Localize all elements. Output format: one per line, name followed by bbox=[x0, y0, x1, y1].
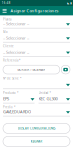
button[interactable]: Predio * bbox=[3, 103, 70, 116]
staticText: ASIGNAR bbox=[30, 140, 42, 143]
staticText: 16:48 bbox=[2, 1, 11, 5]
button[interactable]: Cliente bbox=[3, 42, 70, 57]
staticText: -- Seleccionar -- bbox=[3, 35, 29, 40]
button[interactable]: Silo bbox=[3, 28, 70, 42]
staticText: BUSCAR CONFIGURACIONES bbox=[18, 127, 55, 130]
staticText: Predio * bbox=[3, 105, 15, 109]
staticText: EPS bbox=[3, 96, 9, 101]
staticText: -- Seleccionar -- bbox=[3, 21, 29, 26]
button[interactable]: Menu bbox=[1, 6, 8, 16]
button[interactable]: ESCRIBIR / ESCANEAR bbox=[3, 65, 60, 74]
staticText: Unidad * bbox=[38, 91, 50, 95]
staticText: Cliente bbox=[3, 44, 14, 48]
staticText: N° de Serie * bbox=[3, 77, 21, 80]
staticText: ESCRIBIR / ESCANEAR bbox=[17, 68, 45, 71]
staticText: Producto * bbox=[3, 91, 18, 95]
button[interactable]: N° de Serie * bbox=[3, 75, 70, 89]
staticText: GAVI,EDUARDO bbox=[3, 109, 31, 114]
button[interactable]: Producto * bbox=[3, 89, 34, 103]
button[interactable]: Escanear código bbox=[61, 65, 70, 74]
button[interactable]: Unidad * bbox=[38, 89, 70, 103]
staticText: KEC GL300 bbox=[38, 96, 57, 101]
staticText: Referencia * bbox=[3, 59, 20, 62]
button[interactable]: ASIGNAR bbox=[3, 136, 70, 146]
button[interactable]: Planta bbox=[3, 16, 70, 28]
staticText: Silo bbox=[3, 30, 8, 34]
staticText: ◣ ▮ bbox=[67, 1, 71, 4]
staticText: Asignar Configuraciones bbox=[11, 8, 59, 13]
staticText: -- Seleccionar -- bbox=[3, 49, 29, 55]
button[interactable]: BUSCAR CONFIGURACIONES bbox=[3, 123, 70, 133]
staticText: Planta bbox=[3, 18, 11, 21]
